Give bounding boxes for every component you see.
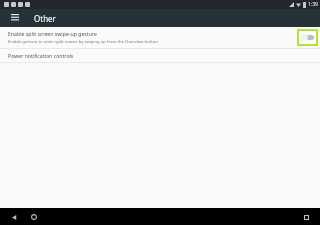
button[interactable]: Recent apps [300,211,312,223]
button[interactable]: Toggle enable split screen swipe-up gest… [299,31,316,44]
button[interactable]: Power notification controls [0,49,320,62]
button[interactable]: Back [8,211,20,223]
staticText: Enable split screen swipe-up gesture [8,30,97,37]
button[interactable]: Open navigation menu [8,11,22,25]
staticText: 1:39 [308,1,318,8]
staticText: Enable gesture to enter split screen by … [8,39,158,45]
button[interactable]: Home [28,211,40,223]
staticText: Power notification controls [8,52,74,59]
staticText: Other [34,13,56,24]
button[interactable]: Enable split screen swipe-up gesture [0,27,320,48]
